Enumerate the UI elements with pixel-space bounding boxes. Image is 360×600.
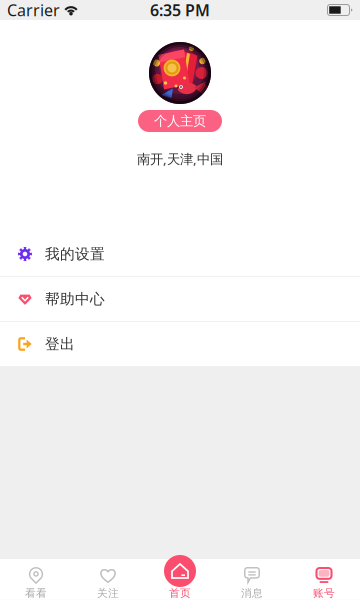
staticText: 登出 — [45, 335, 75, 353]
button[interactable]: Profile photo — [149, 42, 211, 104]
staticText: 账号 — [313, 587, 335, 600]
staticText: 南开,天津,中国 — [137, 150, 223, 168]
staticText: 我的设置 — [45, 245, 105, 263]
button[interactable]: 关注 — [72, 559, 144, 600]
button[interactable]: 我的设置 — [0, 232, 360, 277]
button[interactable]: 个人主页 — [138, 110, 222, 132]
button[interactable]: 帮助中心 — [0, 277, 360, 322]
staticText: 关注 — [97, 587, 119, 600]
button[interactable]: 消息 — [216, 559, 288, 600]
staticText: Carrier — [7, 0, 60, 21]
staticText: 帮助中心 — [45, 290, 105, 308]
staticText: 消息 — [241, 587, 263, 600]
button[interactable]: 登出 — [0, 322, 360, 367]
staticText: 看看 — [25, 587, 47, 600]
button[interactable]: Home — [164, 555, 196, 587]
button[interactable]: 账号 — [288, 559, 360, 600]
button[interactable]: 看看 — [0, 559, 72, 600]
button[interactable]: 首页 — [144, 559, 216, 600]
staticText: 个人主页 — [154, 113, 206, 129]
staticText: 首页 — [169, 587, 191, 600]
staticText: 6:35 PM — [150, 0, 210, 21]
